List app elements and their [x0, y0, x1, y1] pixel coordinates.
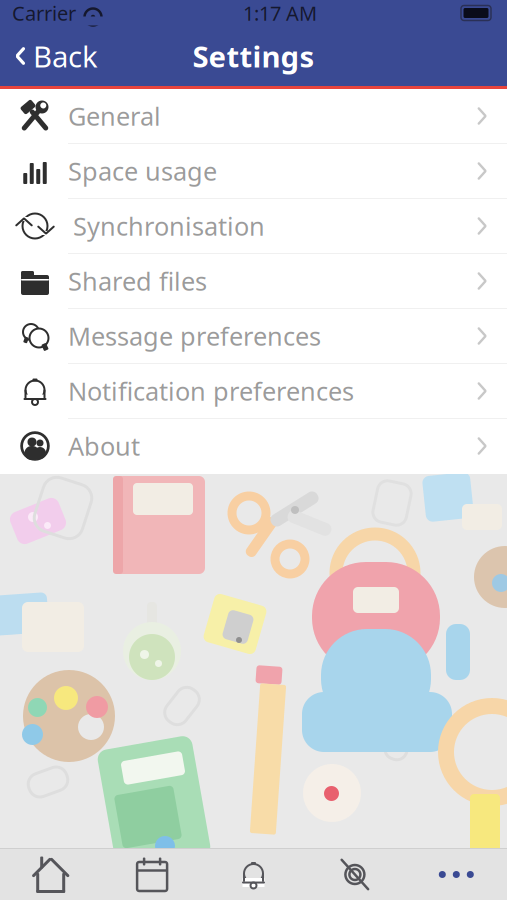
staticText: General — [68, 99, 161, 133]
button[interactable]: Message preferences — [0, 309, 507, 364]
staticText: Synchronisation — [73, 209, 265, 243]
button[interactable]: More — [406, 849, 507, 900]
staticText: Carrier — [12, 0, 76, 26]
staticText: Space usage — [68, 154, 217, 188]
button[interactable]: Notification preferences — [0, 364, 507, 419]
button[interactable]: General — [0, 89, 507, 144]
staticText: Settings — [192, 36, 314, 75]
staticText: Back — [33, 36, 98, 75]
staticText: 1:17 AM — [243, 0, 317, 26]
button[interactable]: Notifications — [203, 849, 304, 900]
button[interactable]: Hidden — [304, 849, 406, 900]
staticText: About — [68, 429, 140, 463]
button[interactable]: Space usage — [0, 144, 507, 199]
button[interactable]: Home — [0, 849, 101, 900]
button[interactable]: About — [0, 419, 507, 474]
staticText: Message preferences — [68, 319, 321, 353]
button[interactable]: Shared files — [0, 254, 507, 309]
button[interactable]: Calendar — [101, 849, 203, 900]
button[interactable]: Synchronisation — [0, 199, 507, 254]
staticText: Shared files — [68, 264, 207, 298]
staticText: Notification preferences — [68, 374, 354, 408]
button[interactable]: Back — [0, 28, 98, 83]
